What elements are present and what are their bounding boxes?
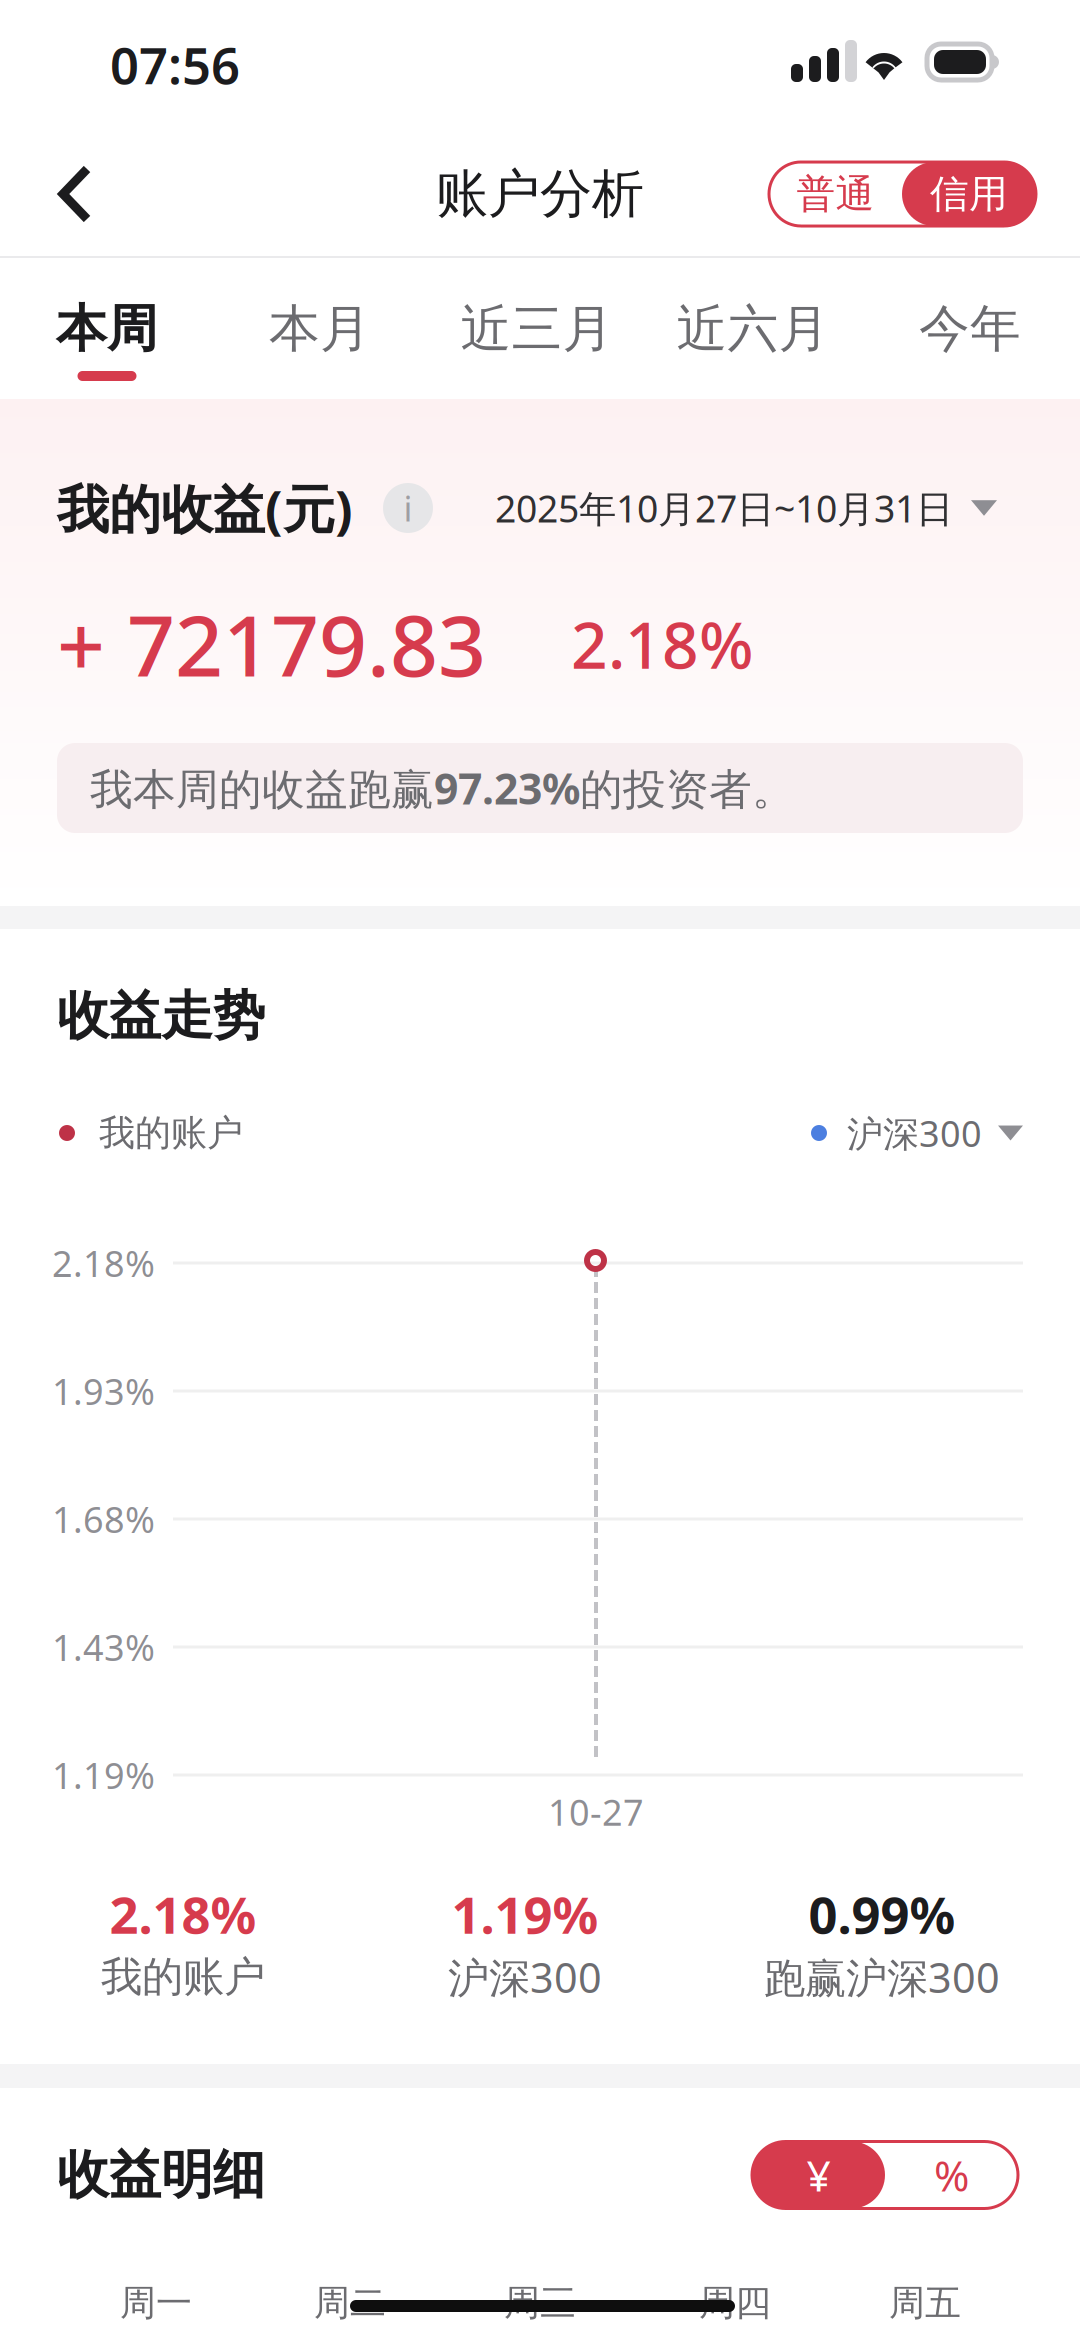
button[interactable]: 2025年10月27日~10月31日	[433, 483, 997, 533]
staticText: 跑赢沪深300	[764, 1950, 1000, 2004]
staticText: 1.93%	[52, 1367, 155, 1415]
button[interactable]: 沪深300	[827, 1109, 1023, 1157]
staticText: 我的账户	[101, 1952, 265, 2002]
staticText: 2.18%	[109, 1880, 256, 1948]
staticText: 周三	[504, 2281, 576, 2325]
staticText: 收益明细	[57, 2143, 265, 2207]
button[interactable]: 本周	[0, 258, 215, 399]
staticText: 我的收益(元)	[57, 473, 353, 543]
staticText: 我的账户	[99, 1111, 243, 1155]
staticText: 07:56	[110, 31, 240, 98]
button[interactable]: 信用	[902, 162, 1036, 226]
staticText: %	[934, 2147, 969, 2203]
staticText: 周一	[120, 2281, 192, 2325]
staticText: 账户分析	[436, 162, 644, 226]
staticText: 收益走势	[57, 984, 265, 1048]
staticText: 2025年10月27日~10月31日	[495, 483, 953, 533]
button[interactable]: 近三月	[429, 258, 645, 399]
staticText: 周二	[314, 2281, 386, 2325]
button[interactable]: 近六月	[645, 258, 861, 399]
staticText: 普通	[796, 170, 874, 218]
staticText: 我本周的收益跑赢97.23%的投资者。	[90, 760, 795, 816]
button[interactable]: Info	[383, 483, 433, 533]
staticText: 1.68%	[52, 1495, 155, 1543]
staticText: 0.99%	[808, 1880, 955, 1948]
staticText: 近六月	[676, 298, 829, 360]
staticText: 今年	[919, 298, 1021, 360]
staticText: 2.18%	[571, 601, 754, 686]
button[interactable]: 今年	[862, 258, 1078, 399]
staticText: 沪深300	[847, 1109, 982, 1157]
staticText: 1.43%	[52, 1623, 155, 1671]
staticText: 本月	[269, 298, 371, 360]
button[interactable]: 本月	[212, 258, 428, 399]
staticText: 本周	[56, 298, 158, 360]
staticText: 1.19%	[451, 1880, 598, 1948]
staticText: ¥	[806, 2147, 830, 2203]
button[interactable]: 普通	[769, 162, 902, 226]
button[interactable]: ¥	[752, 2141, 885, 2208]
staticText: 周五	[889, 2281, 961, 2325]
staticText: + 72179.83	[57, 588, 486, 700]
staticText: 信用	[930, 170, 1008, 218]
staticText: 10-27	[548, 1788, 644, 1836]
button[interactable]: Back	[0, 132, 137, 256]
staticText: 近三月	[460, 298, 613, 360]
staticText: 2.18%	[52, 1239, 155, 1287]
button[interactable]: %	[885, 2141, 1018, 2208]
staticText: 1.19%	[52, 1751, 155, 1799]
staticText: 周四	[699, 2281, 771, 2325]
staticText: i	[403, 485, 412, 531]
staticText: 沪深300	[448, 1950, 602, 2004]
